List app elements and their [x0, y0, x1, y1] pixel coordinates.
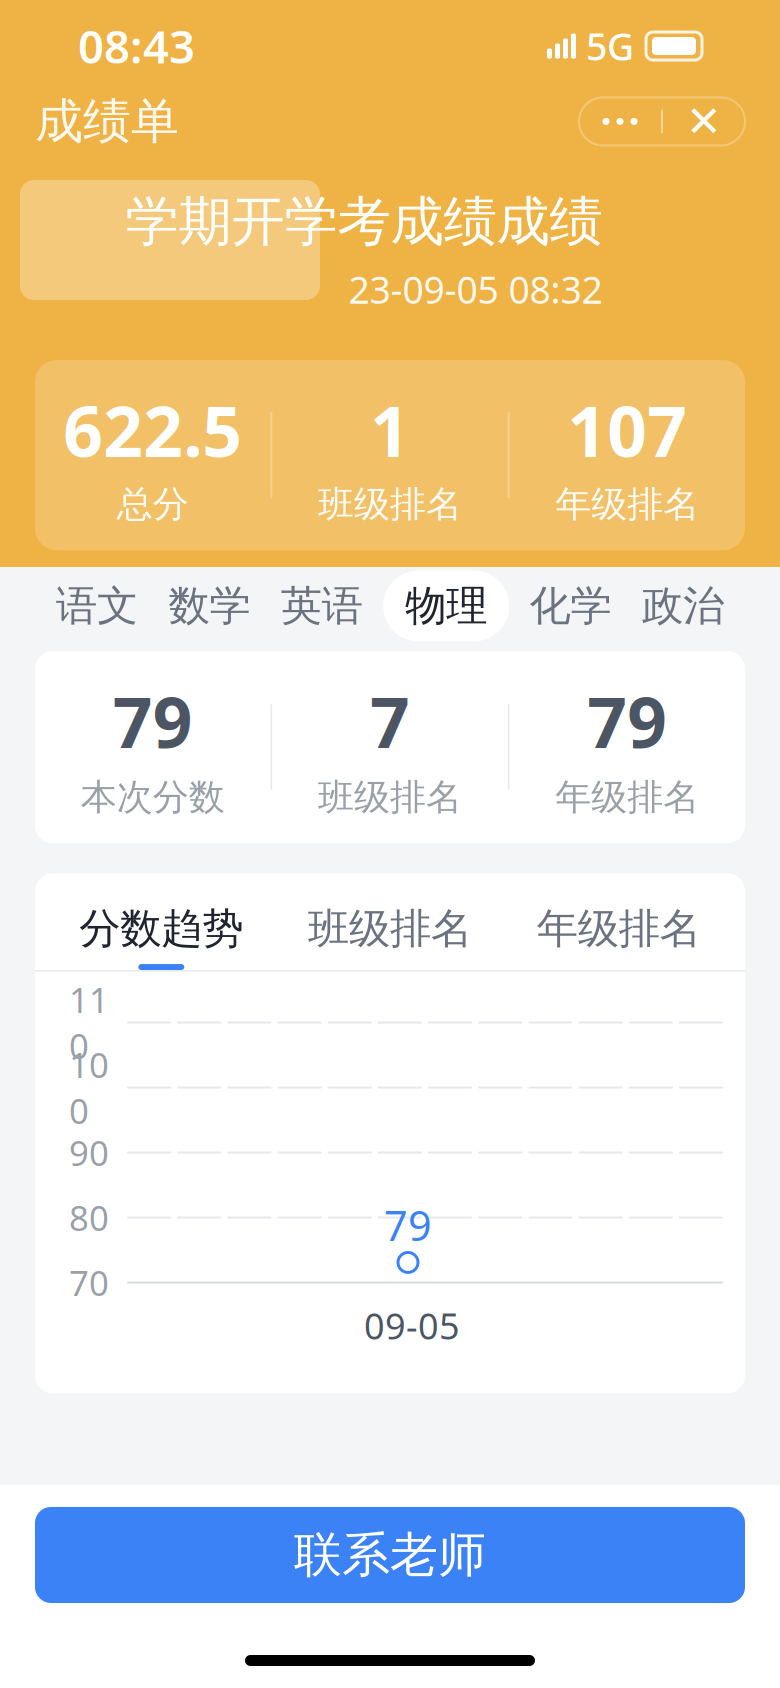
staticText: 5G — [586, 21, 634, 71]
staticText: 622.5 — [63, 384, 242, 476]
staticText: 政治 — [642, 581, 724, 631]
staticText: 英语 — [281, 581, 363, 631]
staticText: 班级排名 — [318, 482, 462, 526]
staticText: 学期开学考成绩成绩 — [125, 189, 602, 254]
staticText: 年级排名 — [555, 775, 699, 819]
staticText: 年级排名 — [555, 482, 699, 526]
staticText: 分数趋势 — [79, 903, 243, 954]
button[interactable]: 化学 — [520, 571, 622, 641]
staticText: 1 — [370, 384, 410, 476]
staticText: 数学 — [168, 581, 250, 631]
button[interactable]: 语文 — [46, 571, 148, 641]
staticText: 语文 — [56, 581, 138, 631]
staticText: 80 — [69, 1194, 109, 1240]
button[interactable]: 关闭 — [663, 98, 745, 144]
staticText: 成绩单 — [35, 92, 179, 151]
staticText: 本次分数 — [81, 775, 225, 819]
staticText: 物理 — [405, 581, 487, 631]
staticText: 23-09-05 08:32 — [348, 264, 602, 314]
button[interactable]: 英语 — [271, 571, 373, 641]
staticText: 79 — [384, 1198, 432, 1252]
staticText: 90 — [69, 1129, 109, 1175]
staticText: 70 — [69, 1259, 109, 1305]
button[interactable]: 分数趋势 — [47, 903, 276, 970]
button[interactable]: 政治 — [632, 571, 734, 641]
staticText: 08:43 — [78, 16, 195, 76]
staticText: 总分 — [117, 482, 189, 526]
staticText: 班级排名 — [318, 775, 462, 819]
button[interactable]: 数学 — [158, 571, 260, 641]
button[interactable]: 物理 — [383, 571, 509, 641]
staticText: 79 — [587, 675, 667, 767]
button[interactable]: 班级排名 — [276, 903, 504, 970]
staticText: 化学 — [530, 581, 612, 631]
staticText: 09-05 — [364, 1302, 460, 1349]
staticText: 100 — [69, 1041, 109, 1134]
button[interactable]: 更多 — [579, 98, 661, 144]
staticText: 班级排名 — [308, 903, 472, 954]
staticText: 年级排名 — [537, 903, 701, 954]
staticText: ✕ — [686, 97, 722, 146]
button[interactable]: 年级排名 — [504, 903, 733, 970]
staticText: 联系老师 — [294, 1525, 486, 1584]
button[interactable]: 联系老师 — [35, 1507, 745, 1603]
staticText: 110 — [69, 976, 109, 1069]
staticText: 79 — [113, 675, 193, 767]
staticText: 7 — [370, 675, 410, 767]
staticText: 107 — [567, 384, 687, 476]
